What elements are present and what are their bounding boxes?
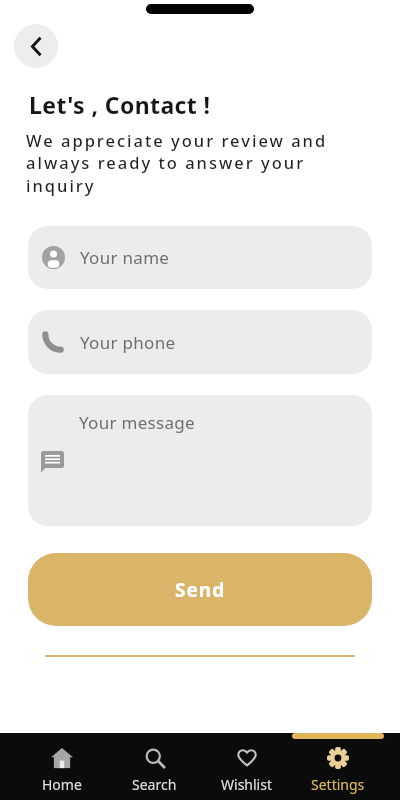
button[interactable]: Your name — [28, 226, 372, 289]
staticText: Send — [175, 577, 226, 603]
staticText: Home — [42, 775, 82, 794]
button[interactable]: Search — [108, 733, 200, 800]
staticText: Search — [132, 775, 177, 794]
staticText: Wishlist — [221, 775, 272, 794]
button[interactable]: Wishlist — [200, 733, 292, 800]
button[interactable]: Your phone — [28, 310, 372, 374]
staticText: We appreciate your review and always rea… — [26, 129, 328, 196]
staticText: Settings — [311, 775, 365, 794]
button[interactable]: Settings — [292, 733, 384, 800]
button[interactable] — [14, 24, 58, 68]
staticText: Your message — [79, 411, 195, 434]
staticText: Let's , Contact ! — [29, 89, 211, 120]
button[interactable]: Your message — [28, 395, 372, 526]
button[interactable]: Home — [16, 733, 108, 800]
button[interactable]: Send — [28, 553, 372, 626]
staticText: Your phone — [80, 331, 176, 354]
staticText: Your name — [80, 246, 170, 269]
